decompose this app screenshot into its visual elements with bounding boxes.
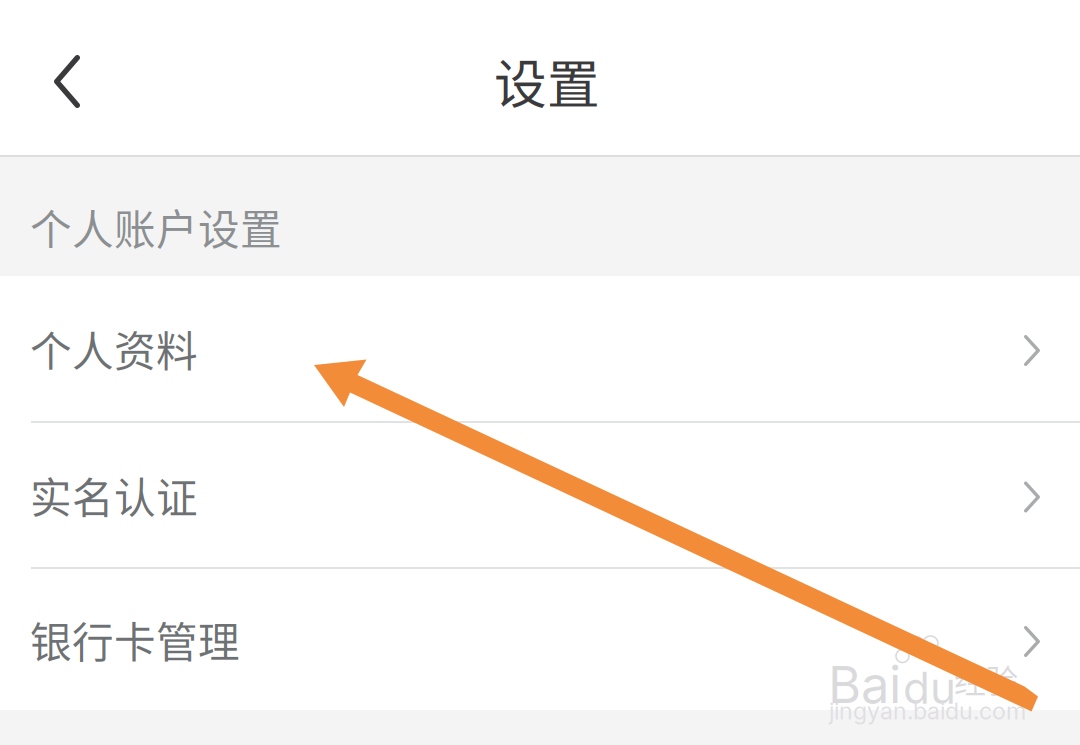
staticText: 个人资料 [30, 318, 198, 379]
staticText: jingyan.baidu.com [829, 697, 1026, 725]
staticText: 实名认证 [30, 465, 198, 525]
button[interactable]: 银行卡管理 [0, 569, 1080, 710]
staticText: Bai [828, 654, 901, 715]
staticText: 个人账户设置 [30, 197, 282, 257]
button[interactable]: 实名认证 [0, 423, 1080, 567]
staticText: 银行卡管理 [30, 609, 240, 670]
staticText: 设置 [494, 42, 600, 119]
staticText: 经验 [954, 656, 1018, 702]
staticText: du [903, 661, 956, 714]
button[interactable]: 个人资料 [0, 276, 1080, 421]
button[interactable]: Back [0, 0, 108, 155]
